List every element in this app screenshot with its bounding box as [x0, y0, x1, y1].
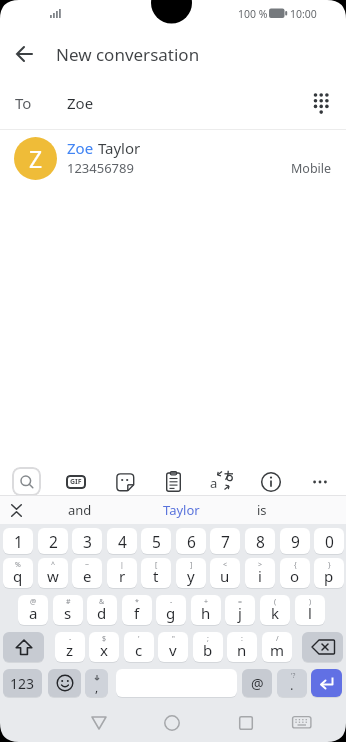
- staticText: ): [309, 597, 312, 607]
- staticText: (: [274, 597, 277, 607]
- button[interactable]: ': [124, 632, 154, 662]
- staticText: &: [99, 597, 105, 607]
- staticText: Z: [29, 143, 43, 174]
- button[interactable]: -: [55, 632, 85, 662]
- button[interactable]: Taylor: [151, 496, 211, 524]
- button[interactable]: @: [18, 595, 48, 625]
- button[interactable]: [157, 708, 186, 737]
- button[interactable]: and: [50, 496, 110, 524]
- button[interactable]: <: [210, 558, 240, 588]
- button[interactable]: a: [209, 466, 240, 494]
- button[interactable]: &: [87, 595, 117, 625]
- staticText: 100 %: [238, 7, 268, 21]
- staticText: a: [29, 603, 38, 623]
- button[interactable]: 8: [245, 528, 275, 554]
- staticText: '?: [291, 671, 296, 680]
- staticText: >: [258, 560, 263, 570]
- staticText: 9: [291, 531, 300, 552]
- staticText: #: [66, 597, 71, 607]
- staticText: /: [276, 634, 279, 644]
- staticText: <: [223, 560, 228, 570]
- staticText: 2: [49, 531, 58, 552]
- button[interactable]: 0: [314, 528, 344, 554]
- staticText: and: [68, 501, 92, 519]
- button[interactable]: Z: [0, 131, 346, 181]
- button[interactable]: {: [280, 558, 310, 588]
- button[interactable]: 7: [210, 528, 240, 554]
- staticText: =: [238, 597, 243, 607]
- button[interactable]: ~: [72, 558, 102, 588]
- staticText: g: [166, 603, 176, 623]
- staticText: %: [15, 560, 21, 570]
- staticText: k: [271, 603, 280, 623]
- button[interactable]: [3, 632, 44, 662]
- button[interactable]: /: [262, 632, 292, 662]
- button[interactable]: '?: [277, 669, 307, 697]
- button[interactable]: [305, 87, 337, 119]
- staticText: ;: [207, 634, 209, 644]
- button[interactable]: [302, 632, 343, 662]
- button[interactable]: ": [158, 632, 188, 662]
- staticText: r: [119, 566, 126, 586]
- staticText: {: [294, 560, 297, 570]
- staticText: ]: [190, 560, 193, 570]
- button[interactable]: *: [122, 595, 152, 625]
- button[interactable]: ^: [38, 558, 68, 588]
- button[interactable]: [: [141, 558, 171, 588]
- button[interactable]: [112, 469, 138, 495]
- button[interactable]: 1: [3, 528, 33, 554]
- button[interactable]: is: [232, 496, 292, 524]
- button[interactable]: ]: [176, 558, 206, 588]
- button[interactable]: [12, 467, 41, 496]
- button[interactable]: -: [156, 595, 186, 625]
- staticText: 8: [256, 531, 265, 552]
- button[interactable]: [161, 468, 185, 495]
- button[interactable]: [308, 471, 332, 492]
- staticText: Zoe: [67, 138, 94, 158]
- button[interactable]: }: [314, 558, 344, 588]
- button[interactable]: 3: [72, 528, 102, 554]
- button[interactable]: [48, 669, 81, 697]
- button[interactable]: 9: [280, 528, 310, 554]
- button[interactable]: [84, 708, 114, 737]
- button[interactable]: =: [225, 595, 255, 625]
- button[interactable]: 123: [3, 669, 42, 697]
- staticText: 6: [187, 531, 196, 552]
- staticText: *: [135, 597, 139, 607]
- button[interactable]: [289, 709, 315, 735]
- button[interactable]: ;: [193, 632, 223, 662]
- staticText: u: [220, 566, 230, 586]
- button[interactable]: [5, 499, 28, 521]
- button[interactable]: GIF: [66, 475, 86, 489]
- button[interactable]: >: [245, 558, 275, 588]
- button[interactable]: [231, 708, 260, 737]
- staticText: v: [169, 640, 177, 660]
- staticText: l: [308, 603, 312, 623]
- button[interactable]: [258, 469, 284, 495]
- staticText: 123: [10, 674, 35, 693]
- staticText: q: [13, 566, 23, 586]
- staticText: Taylor: [94, 138, 141, 158]
- button[interactable]: 2: [38, 528, 68, 554]
- button[interactable]: 4: [107, 528, 137, 554]
- button[interactable]: %: [3, 558, 33, 588]
- staticText: .: [290, 676, 294, 694]
- button[interactable]: 6: [176, 528, 206, 554]
- button[interactable]: |: [107, 558, 137, 588]
- button[interactable]: $: [89, 632, 119, 662]
- staticText: -: [69, 634, 72, 644]
- button[interactable]: @: [242, 669, 272, 697]
- button[interactable]: :: [227, 632, 257, 662]
- button[interactable]: +: [191, 595, 221, 625]
- button[interactable]: [311, 669, 342, 697]
- staticText: 3: [83, 531, 92, 552]
- button[interactable]: (: [260, 595, 290, 625]
- staticText: j: [238, 603, 242, 623]
- staticText: ": [172, 634, 175, 644]
- button[interactable]: 5: [141, 528, 171, 554]
- button[interactable]: ): [295, 595, 325, 625]
- button[interactable]: #: [53, 595, 83, 625]
- button[interactable]: ,: [85, 669, 108, 697]
- button[interactable]: [10, 39, 40, 69]
